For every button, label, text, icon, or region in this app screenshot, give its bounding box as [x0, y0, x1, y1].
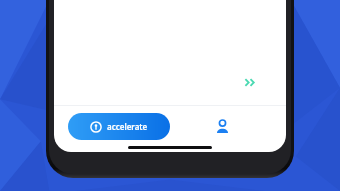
staticText: accelerate: [107, 121, 148, 132]
button[interactable]: Profile: [208, 112, 236, 140]
button[interactable]: accelerate: [68, 113, 170, 140]
button[interactable]: Next: [242, 74, 259, 91]
